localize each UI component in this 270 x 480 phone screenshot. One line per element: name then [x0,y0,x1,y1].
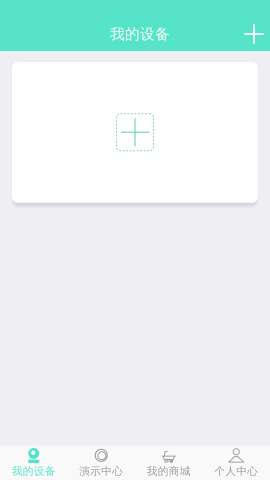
staticText: 我的设备 [12,464,56,478]
staticText: 我的商城 [147,464,191,478]
staticText: 演示中心 [79,464,123,478]
button[interactable]: 我的商城 [135,445,202,480]
staticText: 个人中心 [214,464,258,478]
button[interactable]: 我的设备 [0,445,67,480]
button[interactable]: Add a device [12,62,258,208]
button[interactable]: 个人中心 [202,445,270,480]
staticText: 我的设备 [110,25,170,43]
button[interactable]: 演示中心 [67,445,135,480]
button[interactable]: Add device [228,0,270,54]
